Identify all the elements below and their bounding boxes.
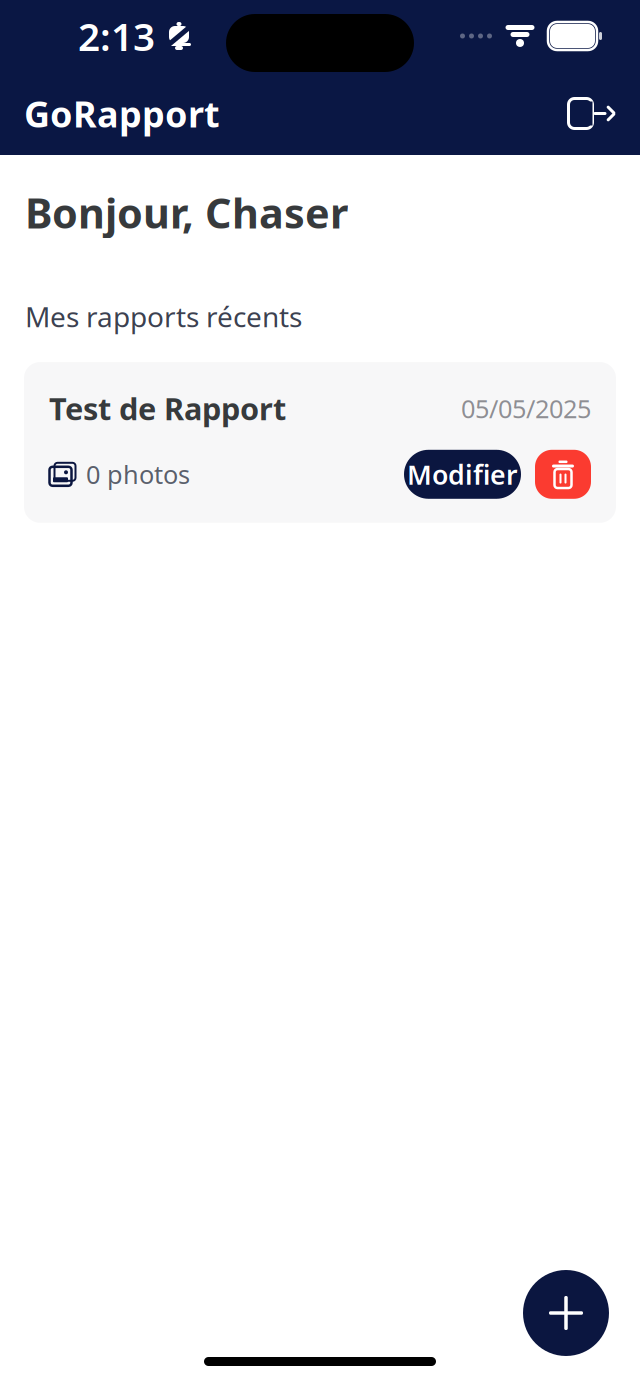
button[interactable]: Se déconnecter [562,83,622,143]
button[interactable]: Supprimer [535,450,591,499]
staticText: 2:13 [78,10,155,62]
staticText: Test de Rapport [49,388,286,429]
staticText: Modifier [407,457,518,492]
button[interactable]: Nouveau rapport [523,1270,609,1356]
staticText: 0 photos [86,457,190,491]
staticText: Bonjour, Chaser [25,185,348,240]
button[interactable]: Modifier [404,450,521,499]
staticText: 05/05/2025 [461,392,591,425]
staticText: GoRapport [24,90,220,137]
staticText: Mes rapports récents [25,298,302,335]
button[interactable]: Test de Rapport [24,362,616,523]
